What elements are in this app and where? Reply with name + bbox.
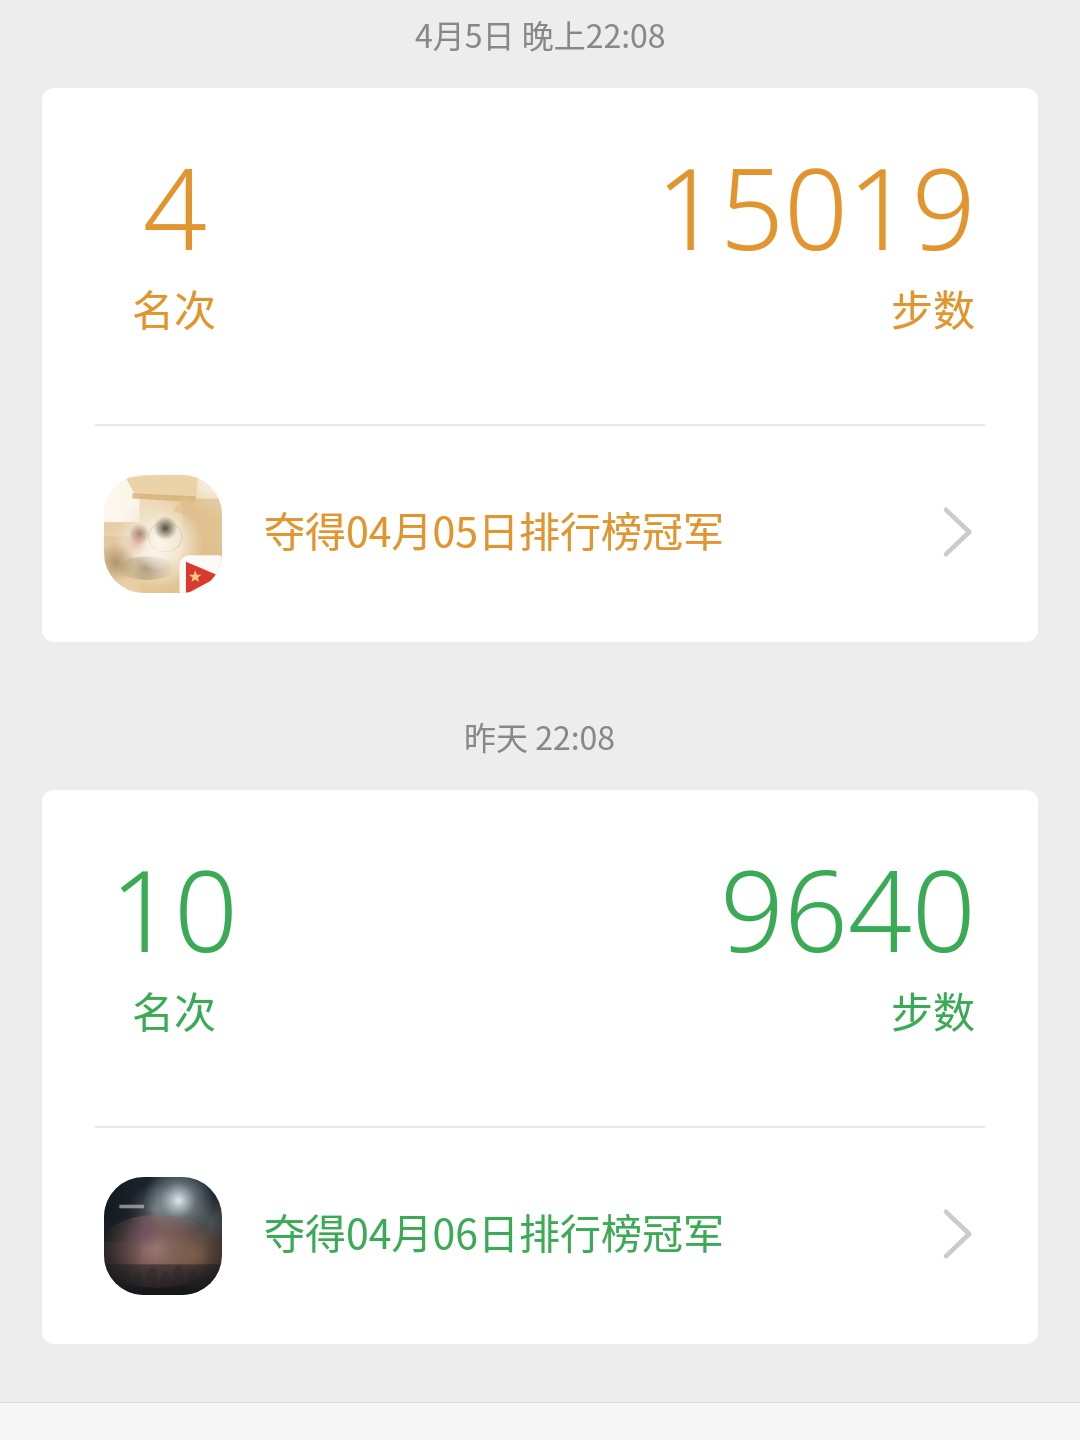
other: Open ranking bbox=[932, 1204, 972, 1264]
staticText: 步数 bbox=[891, 277, 976, 338]
other: Open ranking bbox=[932, 502, 972, 562]
staticText: 10 bbox=[110, 832, 238, 985]
staticText: 15019 bbox=[656, 130, 976, 283]
staticText: 4 bbox=[143, 130, 207, 283]
staticText: 名次 bbox=[132, 979, 217, 1040]
staticText: 昨天 22:08 bbox=[464, 713, 616, 759]
staticText: 4月5日 晚上22:08 bbox=[415, 11, 666, 57]
staticText: 夺得04月06日排行榜冠军 bbox=[264, 1201, 725, 1260]
staticText: 步数 bbox=[891, 979, 976, 1040]
button[interactable]: 4 bbox=[42, 88, 1038, 642]
button[interactable]: 10 bbox=[42, 790, 1038, 1344]
staticText: 名次 bbox=[132, 277, 217, 338]
button[interactable]: 夺得04月06日排行榜冠军 bbox=[42, 1128, 1038, 1344]
button[interactable]: 夺得04月05日排行榜冠军 bbox=[42, 426, 1038, 642]
staticText: 9640 bbox=[720, 832, 976, 985]
staticText: 夺得04月05日排行榜冠军 bbox=[264, 499, 725, 558]
